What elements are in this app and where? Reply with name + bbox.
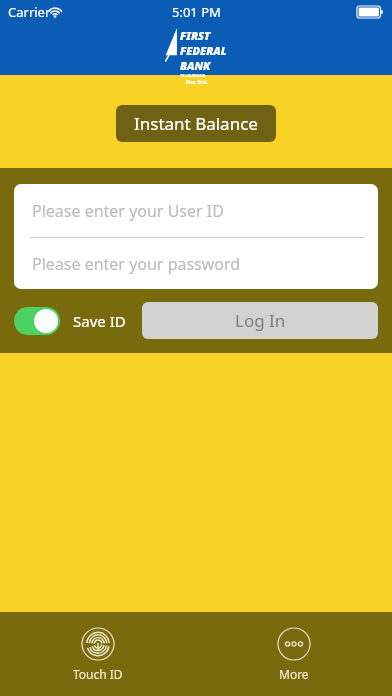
button[interactable]: Log In [142, 302, 378, 339]
staticText: FEDERAL [180, 43, 227, 58]
button[interactable]: Save ID [14, 307, 126, 335]
staticText: OF LOUISIANA [180, 73, 206, 78]
button[interactable]: Please enter your password [14, 238, 378, 289]
staticText: 5:01 PM [172, 3, 221, 21]
staticText: Please enter your User ID [32, 200, 224, 222]
button[interactable]: Instant Balance [116, 105, 276, 142]
staticText: Rise, first. [180, 79, 214, 85]
button[interactable]: Touch ID [57, 623, 139, 686]
staticText: Log In [235, 309, 286, 332]
staticText: More [279, 666, 309, 682]
button[interactable]: More [261, 623, 327, 686]
staticText: Please enter your password [32, 253, 241, 275]
button[interactable]: Please enter your User ID [14, 184, 378, 237]
staticText: BANK [180, 58, 211, 73]
staticText: FIRST [180, 28, 211, 43]
staticText: Save ID [73, 311, 126, 331]
staticText: Touch ID [73, 666, 123, 682]
staticText: Instant Balance [134, 112, 258, 135]
staticText: Carrier [8, 3, 51, 21]
